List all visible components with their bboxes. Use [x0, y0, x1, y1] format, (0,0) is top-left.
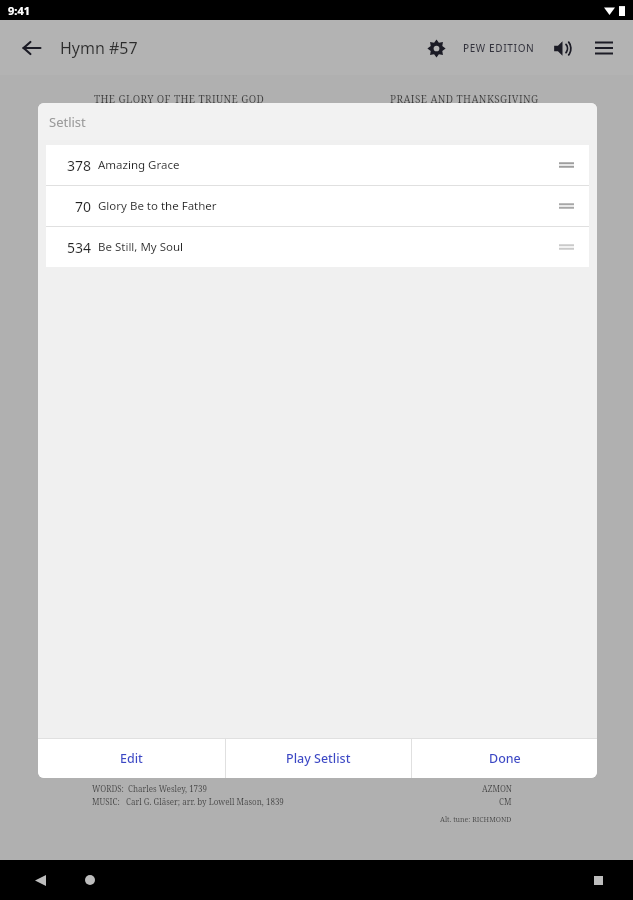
- staticText: Glory Be to the Father: [98, 198, 217, 214]
- button[interactable]: Back: [12, 28, 52, 68]
- staticText: 378: [66, 156, 91, 175]
- button[interactable]: Done: [412, 739, 597, 778]
- button[interactable]: Recent apps: [578, 860, 618, 900]
- staticText: Alt. tune: RICHMOND: [440, 815, 512, 825]
- button[interactable]: Edit: [38, 739, 225, 778]
- staticText: Hymn #57: [60, 37, 138, 59]
- staticText: Setlist: [49, 113, 86, 131]
- button[interactable]: Home: [70, 860, 110, 900]
- button[interactable]: Back: [20, 860, 60, 900]
- button[interactable]: 534: [46, 227, 589, 267]
- button[interactable]: Reorder Glory Be to the Father: [553, 193, 579, 219]
- staticText: MUSIC: Carl G. Gläser; arr. by Lowell Ma…: [92, 796, 284, 807]
- staticText: Be Still, My Soul: [98, 239, 184, 255]
- staticText: Done: [489, 750, 521, 767]
- button[interactable]: Reorder Amazing Grace: [553, 152, 579, 178]
- staticText: Amazing Grace: [98, 157, 180, 173]
- staticText: WORDS: Charles Wesley, 1739: [92, 783, 208, 794]
- button[interactable]: Settings: [415, 27, 457, 69]
- staticText: 9:41: [8, 3, 30, 18]
- button[interactable]: Reorder Be Still, My Soul: [553, 234, 579, 260]
- staticText: 70: [74, 197, 91, 216]
- button[interactable]: Play Setlist: [226, 739, 411, 778]
- button[interactable]: 378: [46, 145, 589, 185]
- button[interactable]: Menu: [583, 27, 625, 69]
- staticText: Edit: [120, 750, 143, 767]
- staticText: CM: [499, 796, 512, 807]
- staticText: 534: [66, 238, 91, 257]
- button[interactable]: PEW EDITION: [457, 37, 541, 59]
- button[interactable]: 70: [46, 186, 589, 226]
- staticText: Play Setlist: [286, 750, 351, 767]
- staticText: PRAISE AND THANKSGIVING: [390, 92, 539, 106]
- staticText: AZMON: [482, 783, 512, 794]
- staticText: THE GLORY OF THE TRIUNE GOD: [94, 92, 265, 106]
- button[interactable]: Volume: [541, 27, 583, 69]
